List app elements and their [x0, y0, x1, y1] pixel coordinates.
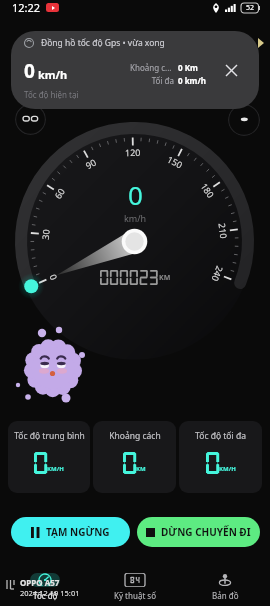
staticText: TẠM NGỪNG [46, 525, 110, 539]
staticText: 0 [24, 58, 35, 84]
staticText: OPPO A57 [20, 577, 60, 588]
button[interactable]: Đồng hồ tốc độ Gps • vừa xong [11, 31, 259, 109]
staticText: Bản đồ [212, 590, 239, 601]
staticText: Tốc độ tối đa [195, 430, 246, 442]
staticText: KM/H [47, 465, 64, 473]
staticText: Khoảng c... [130, 62, 172, 73]
button[interactable]: Khoảng cách [93, 421, 176, 493]
staticText: KM [136, 465, 146, 473]
staticText: Tối đa [130, 75, 174, 86]
staticText: KM [159, 273, 171, 283]
staticText: Kỹ thuật số [114, 590, 157, 601]
staticText: Tốc độ trung bình [14, 430, 85, 442]
button[interactable]: Bản đồ [180, 568, 270, 601]
button[interactable]: Cài đặt đơn vị [15, 104, 46, 135]
button[interactable]: Tốc độ trung bình [8, 421, 90, 493]
staticText: 0 Km [178, 62, 198, 73]
staticText: KM/H [219, 465, 236, 473]
button[interactable]: Cài đặt [228, 104, 260, 136]
button[interactable]: TẠM NGỪNG [11, 517, 130, 547]
button[interactable]: Tốc độ tối đa [179, 421, 262, 493]
staticText: Tốc độ hiện tại [24, 89, 79, 100]
button[interactable]: Đóng thông báo [220, 59, 242, 81]
staticText: 52 [246, 3, 255, 13]
staticText: Tốc độ [33, 590, 58, 601]
staticText: DỪNG CHUYẾN ĐI [161, 525, 251, 539]
button[interactable]: DỪNG CHUYẾN ĐI [137, 517, 260, 547]
button[interactable]: Tốc độ [0, 568, 90, 601]
staticText: Khoảng cách [109, 430, 161, 442]
staticText: km/h [38, 67, 68, 82]
staticText: 12:22 [12, 0, 41, 15]
staticText: 0 km/h [178, 75, 206, 86]
staticText: km/h [124, 212, 147, 224]
staticText: Đồng hồ tốc độ Gps • vừa xong [41, 37, 165, 49]
staticText: 2024.12.19 15:01 [20, 588, 80, 598]
button[interactable]: Kỹ thuật số [90, 568, 180, 601]
staticText: 0 [128, 177, 143, 212]
